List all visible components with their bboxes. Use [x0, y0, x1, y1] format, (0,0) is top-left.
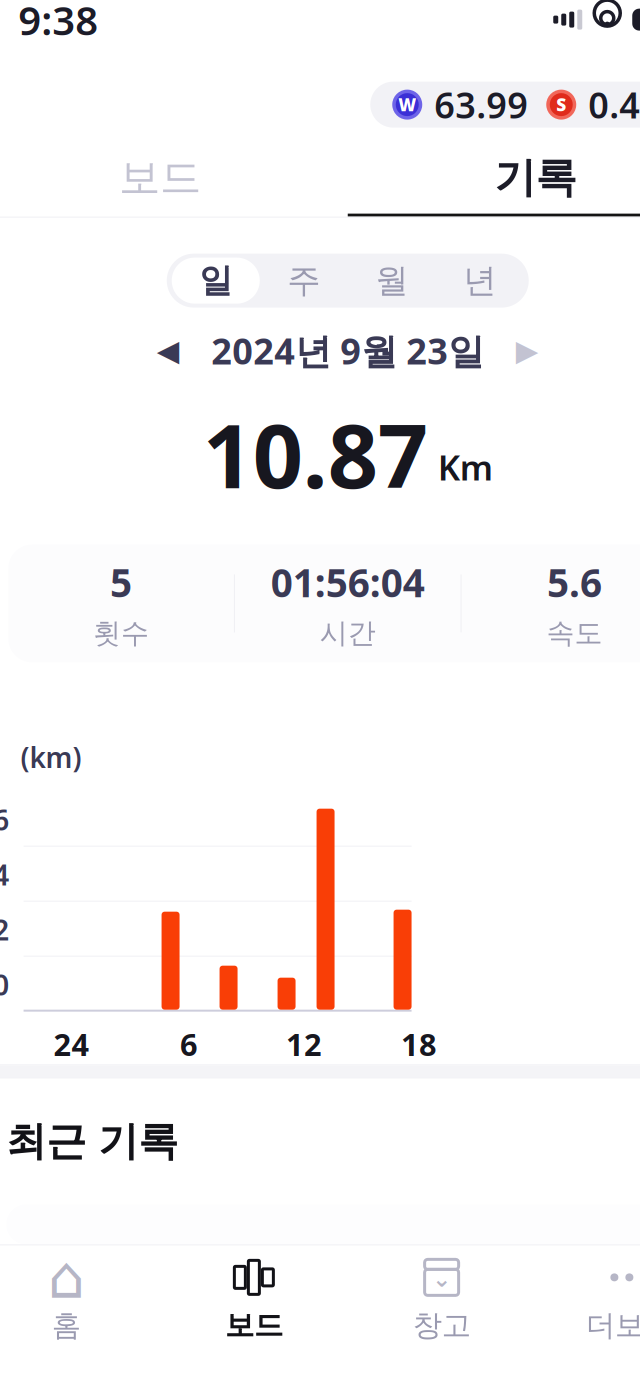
- staticText: 더보기: [586, 1307, 640, 1343]
- staticText: 월: [375, 260, 408, 301]
- staticText: 년: [463, 260, 496, 301]
- staticText: (km): [20, 738, 81, 776]
- staticText: 창고: [413, 1307, 471, 1343]
- button[interactable]: 월: [348, 258, 436, 304]
- staticText: 시간: [320, 616, 376, 650]
- staticText: ▶: [516, 334, 539, 367]
- staticText: 기록: [494, 152, 576, 203]
- button[interactable]: 다음 날짜: [500, 324, 554, 378]
- staticText: 10.87: [203, 396, 428, 512]
- staticText: 속도: [546, 616, 602, 650]
- staticText: W: [398, 93, 416, 116]
- staticText: 5: [110, 557, 132, 608]
- staticText: Km: [438, 444, 493, 490]
- staticText: 2024년 9월 23일: [211, 327, 484, 374]
- button[interactable]: 주: [260, 258, 348, 304]
- staticText: 횟수: [93, 616, 149, 650]
- button[interactable]: 년: [436, 258, 524, 304]
- button[interactable]: 보드: [160, 1245, 348, 1355]
- staticText: S: [556, 93, 566, 116]
- staticText: 3.36: [0, 800, 10, 839]
- staticText: ⌂: [48, 1244, 85, 1311]
- staticText: 9:38: [18, 0, 98, 46]
- button[interactable]: ⌂: [0, 1245, 160, 1355]
- staticText: 0.46: [588, 81, 640, 128]
- staticText: 01:56:04: [271, 557, 425, 608]
- staticText: 24: [53, 1024, 89, 1064]
- staticText: 홈: [52, 1307, 81, 1343]
- staticText: 63.99: [434, 81, 528, 128]
- staticText: 일: [199, 260, 232, 301]
- button[interactable]: ⌄: [348, 1245, 536, 1355]
- staticText: 1.12: [0, 910, 10, 949]
- staticText: 12: [286, 1024, 322, 1064]
- staticText: 0: [0, 965, 10, 1004]
- staticText: 보드: [119, 152, 201, 203]
- button[interactable]: 보드: [0, 142, 348, 214]
- button[interactable]: W: [370, 82, 640, 128]
- button[interactable]: 기록: [348, 142, 640, 214]
- staticText: 보드: [225, 1307, 283, 1343]
- button[interactable]: 이전 날짜: [141, 324, 195, 378]
- staticText: 6: [180, 1024, 198, 1064]
- staticText: 18: [401, 1024, 437, 1064]
- staticText: 2.24: [0, 855, 10, 894]
- button[interactable]: 더보기: [535, 1245, 640, 1355]
- staticText: 5.6: [547, 557, 602, 608]
- staticText: 주: [287, 260, 320, 301]
- staticText: ⌄: [432, 1266, 451, 1292]
- staticText: ◀: [157, 334, 180, 367]
- staticText: 최근 기록: [6, 1117, 178, 1166]
- button[interactable]: 일: [172, 258, 260, 304]
